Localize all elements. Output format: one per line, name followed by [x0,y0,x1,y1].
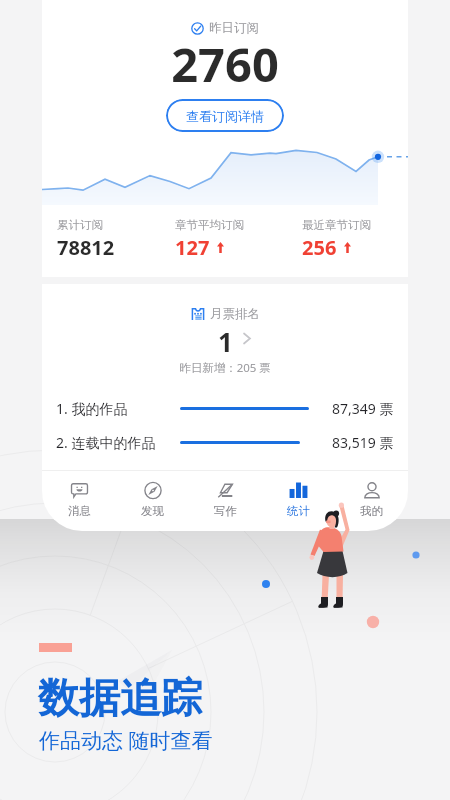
button[interactable]: 写作 [189,472,262,520]
button[interactable]: 发现 [116,472,189,520]
button[interactable]: 统计 [262,472,335,520]
staticText: 83,519 票 [332,433,394,451]
staticText: 写作 [214,504,237,518]
staticText: 最近章节订阅 [302,218,371,232]
staticText: 2760 [42,32,408,96]
staticText: 数据追踪 [38,673,202,725]
staticText: 1. 我的作品 [56,399,128,417]
staticText: 1 [218,324,233,352]
button[interactable]: 2. 连载中的作品 [42,433,408,451]
staticText: 昨日订阅 [209,20,259,36]
button[interactable]: 1. 我的作品 [42,399,408,417]
button[interactable]: 1 [42,324,408,352]
staticText: 消息 [68,504,91,518]
staticText: 昨日新增：205 票 [42,360,408,376]
staticText: 查看订阅详情 [186,108,264,124]
staticText: 256 [302,234,337,261]
staticText: 月票排名 [210,306,260,322]
staticText: 累计订阅 [57,218,103,232]
button[interactable]: 月票排名 [42,306,408,322]
staticText: 发现 [141,504,164,518]
staticText: 章节平均订阅 [175,218,244,232]
button[interactable]: 消息 [42,472,116,520]
button[interactable]: 我的 [335,472,408,520]
staticText: 作品动态 随时查看 [39,726,213,755]
staticText: 统计 [287,504,310,518]
staticText: 87,349 票 [332,399,394,417]
staticText: 78812 [57,234,115,261]
staticText: 2. 连载中的作品 [56,433,156,451]
staticText: 我的 [360,504,383,518]
button[interactable]: 查看订阅详情 [166,99,284,132]
staticText: 127 [175,234,210,261]
